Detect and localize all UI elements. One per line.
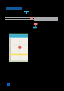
button[interactable]: Umbrella: [24, 11, 29, 14]
button[interactable]: Map: [9, 33, 28, 62]
button[interactable]: Icon: [33, 23, 38, 29]
